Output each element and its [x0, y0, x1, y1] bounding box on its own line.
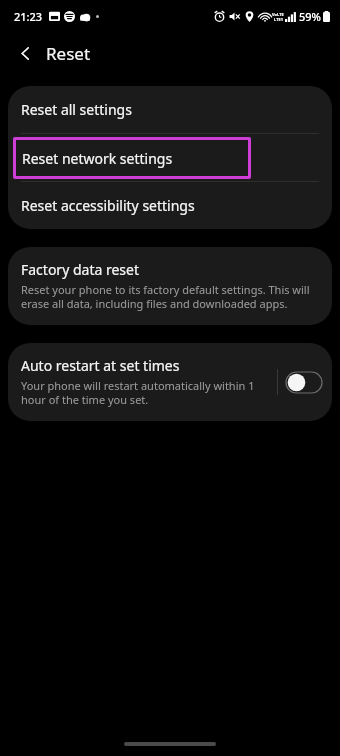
staticText: Reset your phone to its factory default … [21, 282, 319, 311]
button[interactable]: Back [8, 36, 42, 70]
staticText: Auto restart at set times [21, 356, 180, 375]
button[interactable]: Auto restart toggle [286, 372, 322, 393]
staticText: LTE1 [274, 17, 283, 22]
staticText: Reset accessibility settings [21, 196, 195, 215]
button[interactable]: Auto restart at set times [8, 343, 277, 421]
staticText: Your phone will restart automatically wi… [21, 378, 271, 407]
staticText: 21:23 [14, 9, 43, 24]
button[interactable]: Reset accessibility settings [8, 182, 332, 229]
staticText: Factory data reset [21, 260, 139, 279]
staticText: Reset network settings [22, 149, 173, 168]
staticText: VoLTE [272, 12, 284, 17]
staticText: 59% [299, 9, 321, 24]
button[interactable]: Reset all settings [8, 86, 332, 133]
staticText: Reset [46, 42, 91, 65]
button[interactable]: Reset network settings [8, 134, 332, 181]
staticText: Reset all settings [21, 100, 132, 119]
button[interactable]: Factory data reset [8, 247, 332, 325]
